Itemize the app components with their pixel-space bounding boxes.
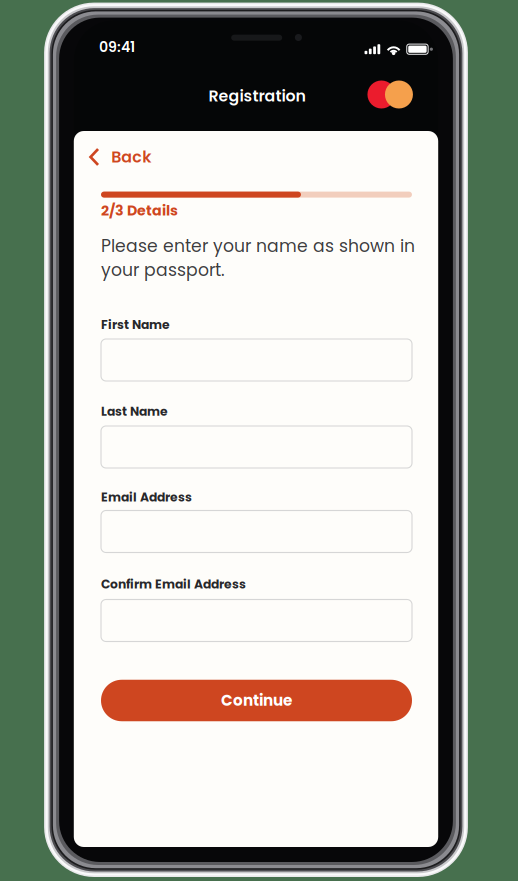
button[interactable] <box>101 599 412 641</box>
button[interactable] <box>101 426 412 468</box>
staticText: Email Address <box>101 489 192 506</box>
staticText: Registration <box>208 85 305 107</box>
button[interactable] <box>101 510 412 552</box>
staticText: First Name <box>101 316 170 333</box>
staticText: 09:41 <box>99 37 135 57</box>
staticText: Please enter your name as shown in your … <box>101 234 415 282</box>
button[interactable]: Back <box>89 141 163 173</box>
staticText: Back <box>111 146 151 168</box>
button[interactable]: Continue <box>101 680 412 721</box>
button[interactable] <box>101 339 412 381</box>
staticText: Last Name <box>101 403 168 420</box>
staticText: Continue <box>221 690 292 711</box>
staticText: 2/3 Details <box>101 201 178 220</box>
staticText: Confirm Email Address <box>101 576 246 593</box>
button[interactable]: Mastercard <box>367 80 413 108</box>
